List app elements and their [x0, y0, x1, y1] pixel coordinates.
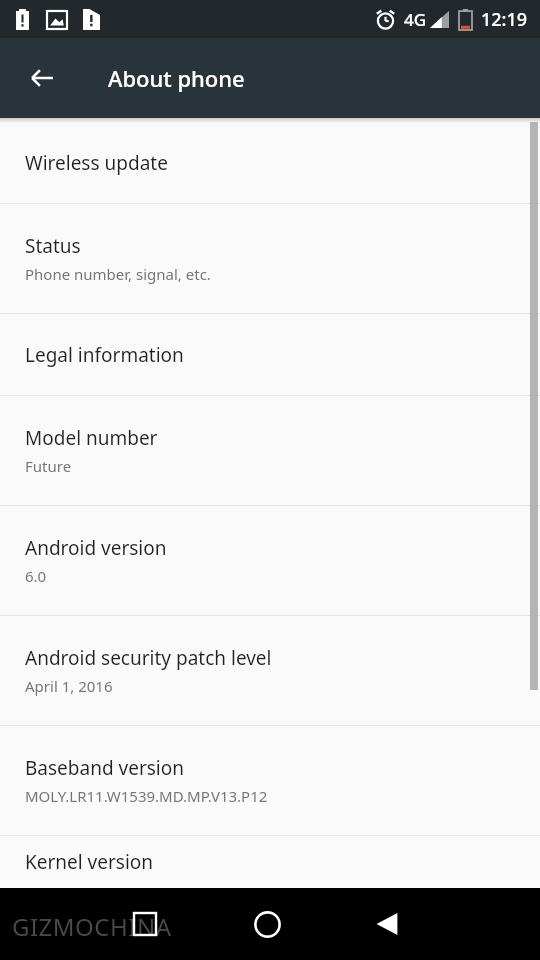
staticText: Baseband version — [25, 755, 184, 781]
staticText: 12:19 — [481, 7, 528, 32]
button[interactable]: Android security patch level — [0, 616, 540, 725]
staticText: April 1, 2016 — [25, 676, 113, 696]
button[interactable]: Baseband version — [0, 726, 540, 835]
staticText: Phone number, signal, etc. — [25, 264, 211, 284]
staticText: Android version — [25, 535, 167, 561]
staticText: MOLY.LR11.W1539.MD.MP.V13.P12 — [25, 786, 268, 806]
staticText: About phone — [108, 63, 245, 93]
button[interactable]: Navigate up — [14, 50, 70, 106]
button[interactable]: Home — [237, 894, 297, 954]
button[interactable]: Wireless update — [0, 122, 540, 203]
staticText: Model number — [25, 425, 158, 451]
staticText: 6.0 — [25, 566, 47, 586]
button[interactable]: Recent apps — [117, 896, 173, 952]
button[interactable]: Back — [358, 894, 418, 954]
staticText: Kernel version — [25, 849, 154, 875]
staticText: Legal information — [25, 342, 184, 368]
staticText: Status — [25, 233, 81, 259]
staticText: GIZMOCHINA — [12, 910, 172, 943]
staticText: Future — [25, 456, 72, 476]
staticText: 4G — [404, 8, 427, 31]
button[interactable]: Legal information — [0, 314, 540, 395]
button[interactable]: Android version — [0, 506, 540, 615]
button[interactable]: Kernel version — [0, 836, 540, 888]
button[interactable]: Status — [0, 204, 540, 313]
staticText: Wireless update — [25, 150, 168, 176]
button[interactable]: Model number — [0, 396, 540, 505]
staticText: Android security patch level — [25, 645, 272, 671]
